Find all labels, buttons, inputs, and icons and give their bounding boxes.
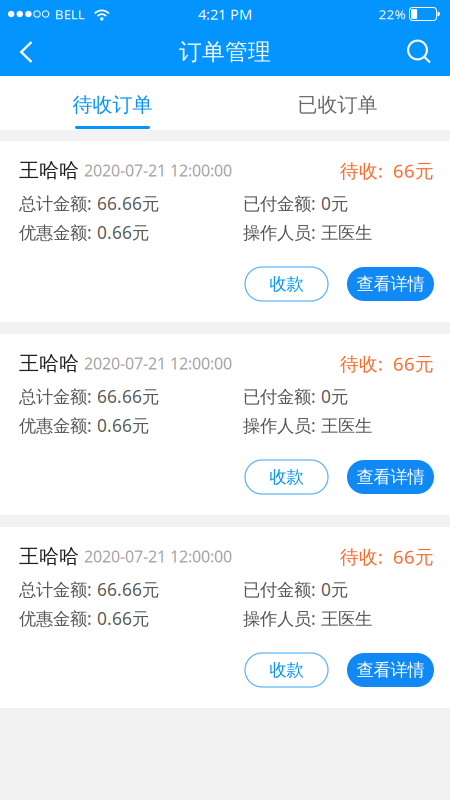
staticText: 收款 [269,659,303,681]
button[interactable]: 待收订单 [0,76,225,130]
staticText: 待收: 66元 [340,544,434,569]
staticText: 查看详情 [356,466,424,488]
button[interactable]: 收款 [245,460,328,494]
staticText: 总计金额: 66.66元 [19,385,159,408]
staticText: 操作人员: 王医生 [243,221,372,244]
staticText: 王哈哈 [19,158,79,183]
staticText: 收款 [269,273,303,295]
button[interactable]: 收款 [245,653,328,687]
staticText: 总计金额: 66.66元 [19,578,159,601]
staticText: 王哈哈 [19,544,79,569]
staticText: 已付金额: 0元 [243,192,348,215]
button[interactable]: 查看详情 [347,267,434,301]
staticText: 待收: 66元 [340,351,434,376]
staticText: 查看详情 [356,273,424,295]
staticText: 操作人员: 王医生 [243,607,372,630]
staticText: BELL [55,5,85,23]
button[interactable]: 收款 [245,267,328,301]
staticText: 2020-07-21 12:00:00 [84,353,232,374]
staticText: 收款 [269,466,303,488]
staticText: 查看详情 [356,659,424,681]
staticText: 操作人员: 王医生 [243,414,372,437]
staticText: 2020-07-21 12:00:00 [84,160,232,181]
staticText: 4:21 PM [198,4,252,24]
button[interactable]: 已收订单 [225,76,450,130]
button[interactable]: Back [0,28,48,76]
staticText: 已收订单 [297,92,377,117]
staticText: 已付金额: 0元 [243,578,348,601]
staticText: 优惠金额: 0.66元 [19,607,149,630]
staticText: 待收: 66元 [340,158,434,183]
staticText: 已付金额: 0元 [243,385,348,408]
button[interactable]: 查看详情 [347,460,434,494]
button[interactable]: Search [393,28,450,76]
staticText: 2020-07-21 12:00:00 [84,546,232,567]
staticText: 总计金额: 66.66元 [19,192,159,215]
staticText: 优惠金额: 0.66元 [19,221,149,244]
staticText: 22% [378,5,405,23]
staticText: 优惠金额: 0.66元 [19,414,149,437]
staticText: 王哈哈 [19,351,79,376]
button[interactable]: 查看详情 [347,653,434,687]
staticText: 待收订单 [72,92,152,117]
staticText: 订单管理 [179,38,271,66]
